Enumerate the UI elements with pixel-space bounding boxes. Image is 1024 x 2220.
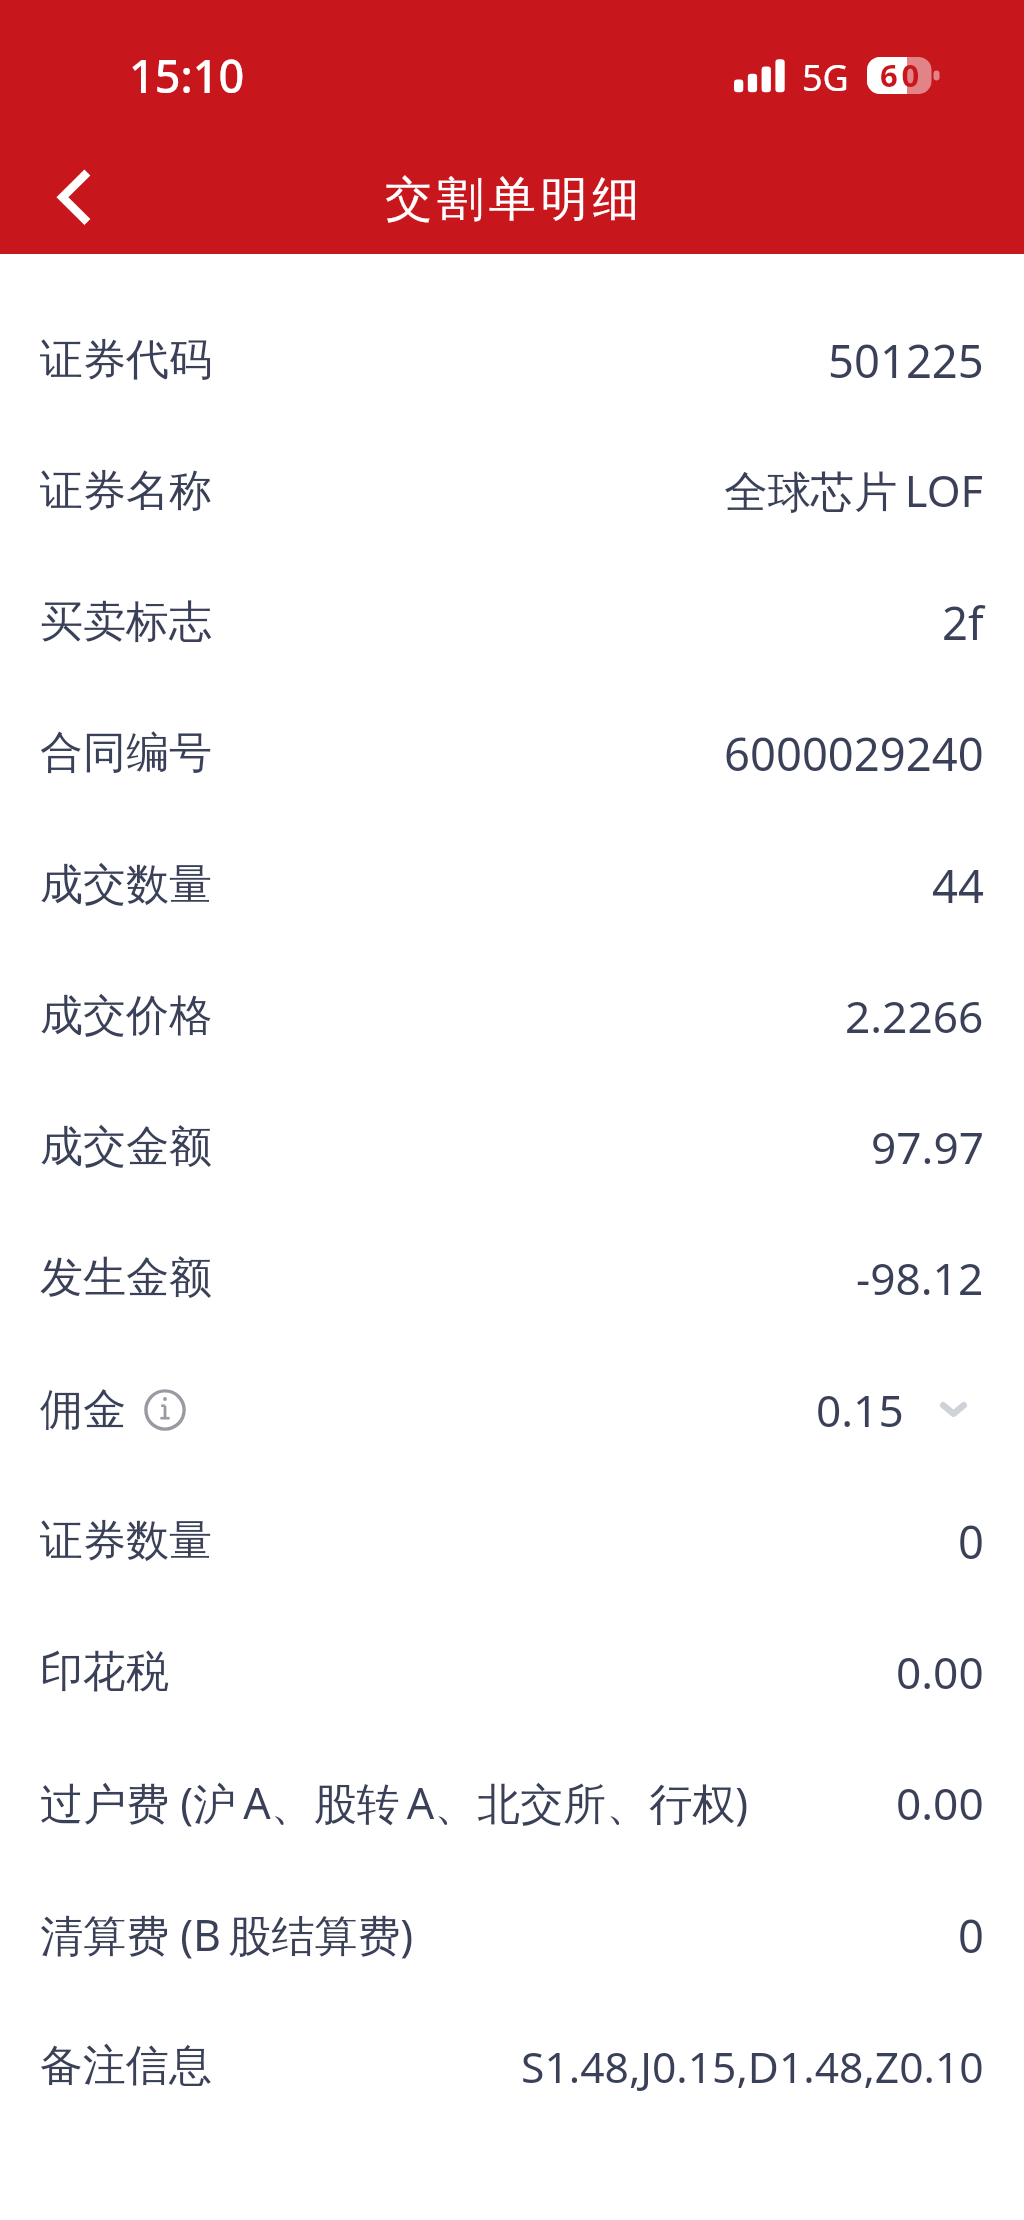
staticText: 2.2266 bbox=[845, 986, 984, 1046]
staticText: 5G bbox=[802, 53, 849, 102]
staticText: 印花税 bbox=[40, 1645, 169, 1699]
button[interactable]: 成交价格 bbox=[0, 950, 1024, 1081]
staticText: 合同编号 bbox=[40, 726, 212, 780]
staticText: 0.15 bbox=[816, 1380, 904, 1440]
button[interactable]: 佣金 bbox=[0, 1344, 1024, 1475]
staticText: 成交数量 bbox=[40, 858, 212, 912]
button[interactable]: 合同编号 bbox=[0, 687, 1024, 818]
staticText: 交割单明细 bbox=[385, 170, 645, 229]
button[interactable]: 印花税 bbox=[0, 1606, 1024, 1737]
staticText: 成交价格 bbox=[40, 989, 212, 1043]
staticText: 全球芯片 LOF bbox=[724, 461, 984, 520]
staticText: 发生金额 bbox=[40, 1251, 212, 1305]
button[interactable]: Back bbox=[0, 133, 128, 261]
staticText: 15:10 bbox=[129, 45, 245, 106]
staticText: 501225 bbox=[828, 329, 984, 391]
staticText: 60 bbox=[880, 54, 924, 96]
staticText: -98.12 bbox=[856, 1248, 984, 1308]
button[interactable]: 过户费 (沪 A、股转 A、北交所、行权) bbox=[0, 1737, 1024, 1868]
staticText: 买卖标志 bbox=[40, 595, 212, 649]
staticText: 2f bbox=[942, 591, 984, 653]
staticText: 6000029240 bbox=[724, 722, 984, 784]
button[interactable]: 证券数量 bbox=[0, 1475, 1024, 1606]
staticText: 44 bbox=[932, 854, 984, 916]
button[interactable]: 证券代码 bbox=[0, 294, 1024, 425]
staticText: 备注信息 bbox=[40, 2039, 212, 2093]
button[interactable]: 成交金额 bbox=[0, 1081, 1024, 1212]
staticText: 清算费 (B 股结算费) bbox=[40, 1905, 414, 1964]
staticText: 0.00 bbox=[896, 1773, 984, 1833]
other: Commission info bbox=[144, 1389, 186, 1431]
staticText: 证券名称 bbox=[40, 464, 212, 518]
button[interactable]: 成交数量 bbox=[0, 819, 1024, 950]
button[interactable]: 备注信息 bbox=[0, 2000, 1024, 2131]
staticText: 成交金额 bbox=[40, 1120, 212, 1174]
button[interactable]: 买卖标志 bbox=[0, 556, 1024, 687]
button[interactable]: 发生金额 bbox=[0, 1212, 1024, 1343]
staticText: 0 bbox=[958, 1510, 984, 1572]
staticText: 过户费 (沪 A、股转 A、北交所、行权) bbox=[40, 1773, 749, 1832]
staticText: 97.97 bbox=[871, 1117, 984, 1177]
staticText: 证券数量 bbox=[40, 1514, 212, 1568]
staticText: 佣金 bbox=[40, 1383, 126, 1437]
staticText: 证券代码 bbox=[40, 333, 212, 387]
button[interactable]: 证券名称 bbox=[0, 425, 1024, 556]
button[interactable]: 清算费 (B 股结算费) bbox=[0, 1869, 1024, 2000]
staticText: S1.48,J0.15,D1.48,Z0.10 bbox=[521, 2037, 984, 2095]
staticText: 0 bbox=[958, 1904, 984, 1966]
staticText: 0.00 bbox=[896, 1642, 984, 1702]
